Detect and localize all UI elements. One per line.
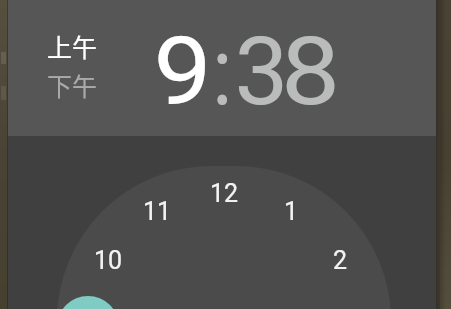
button[interactable]: 1: [269, 196, 313, 226]
button[interactable]: 8: [265, 17, 355, 127]
button[interactable]: 9: [138, 17, 226, 127]
button[interactable]: 11: [135, 196, 179, 226]
staticText: :: [212, 17, 233, 127]
staticText: 11: [143, 197, 172, 226]
staticText: 3: [234, 17, 289, 127]
staticText: 2: [333, 246, 348, 275]
staticText: 9: [153, 17, 212, 127]
button[interactable]: [57, 296, 119, 309]
staticText: 12: [210, 179, 239, 208]
button[interactable]: 上午: [32, 28, 112, 64]
staticText: 10: [94, 246, 123, 275]
button[interactable]: 3: [220, 17, 302, 127]
button[interactable]: 10: [86, 245, 130, 275]
button[interactable]: 下午: [32, 67, 112, 103]
staticText: 1: [284, 197, 299, 226]
button[interactable]: 2: [318, 245, 362, 275]
staticText: 下午: [47, 67, 98, 103]
staticText: 上午: [47, 28, 98, 64]
button[interactable]: :: [186, 17, 258, 127]
staticText: 8: [281, 17, 340, 127]
button[interactable]: 12: [202, 178, 246, 208]
